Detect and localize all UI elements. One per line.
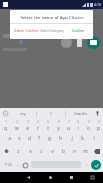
staticText: m: [83, 148, 88, 155]
button[interactable]: Voice input: [94, 110, 101, 117]
button[interactable]: Delete Confirm: [12, 28, 39, 34]
staticText: p: [97, 125, 100, 132]
staticText: 1: [5, 120, 7, 124]
staticText: t: [47, 125, 49, 132]
staticText: 0: [98, 120, 100, 124]
button[interactable]: g: [44, 132, 55, 145]
staticText: y: [57, 125, 60, 132]
staticText: 7: [68, 120, 70, 124]
button[interactable]: m: [80, 145, 91, 158]
staticText: w: [15, 125, 19, 132]
button[interactable]: Emoji: [21, 161, 29, 169]
button[interactable]: v: [47, 145, 58, 158]
staticText: b: [62, 148, 65, 155]
button[interactable]: Confirm Selection: [65, 28, 91, 34]
button[interactable]: .: [83, 158, 90, 171]
staticText: k: [81, 135, 84, 142]
button[interactable]: a: [4, 132, 14, 145]
button[interactable]: Screenshot: [88, 173, 97, 182]
button[interactable]: 2: [11, 119, 22, 132]
button[interactable]: I: [37, 108, 65, 119]
button[interactable]: h: [55, 132, 66, 145]
staticText: l: [93, 135, 95, 142]
staticText: Confirm Selection: [65, 29, 91, 33]
button[interactable]: z: [12, 145, 24, 158]
button[interactable]: s: [14, 132, 24, 145]
staticText: .: [86, 161, 88, 168]
staticText: 4:15: [94, 2, 101, 7]
staticText: Select Category: [40, 29, 64, 33]
staticText: x: [29, 148, 32, 155]
staticText: 5: [47, 120, 49, 124]
staticText: o: [87, 125, 90, 132]
staticText: q: [4, 125, 7, 132]
staticText: 6: [58, 120, 60, 124]
button[interactable]: 0: [93, 119, 103, 132]
button[interactable]: x: [24, 145, 36, 158]
button[interactable]: c: [36, 145, 47, 158]
button[interactable]: k: [77, 132, 88, 145]
button[interactable]: Keyboard settings: [2, 110, 9, 117]
staticText: 9: [88, 120, 90, 124]
button[interactable]: n: [69, 145, 80, 158]
staticText: r: [37, 125, 39, 132]
button[interactable]: Home: [46, 173, 55, 182]
staticText: 3: [27, 120, 29, 124]
button[interactable]: 9: [83, 119, 93, 132]
button[interactable]: Recents: [67, 173, 76, 182]
staticText: v: [51, 148, 54, 155]
button[interactable]: f: [34, 132, 44, 145]
button[interactable]: 3: [22, 119, 33, 132]
staticText: thanks: [74, 111, 87, 116]
staticText: h: [59, 135, 62, 142]
button[interactable]: Backspace: [91, 145, 103, 158]
staticText: my: [20, 111, 26, 116]
staticText: 2: [16, 120, 18, 124]
staticText: j: [71, 135, 73, 142]
staticText: g: [48, 135, 51, 142]
staticText: s: [18, 135, 21, 142]
button[interactable]: b: [58, 145, 69, 158]
staticText: a: [8, 135, 11, 142]
staticText: 4: [37, 120, 39, 124]
button[interactable]: Select Category: [39, 28, 65, 34]
staticText: 8: [77, 120, 79, 124]
staticText: z: [17, 148, 20, 155]
staticText: u: [67, 125, 70, 132]
staticText: ,: [17, 161, 19, 168]
staticText: i: [77, 125, 79, 132]
staticText: f: [38, 135, 40, 142]
button[interactable]: d: [24, 132, 34, 145]
button[interactable]: l: [88, 132, 99, 145]
button[interactable]: Back: [24, 173, 33, 182]
button[interactable]: j: [66, 132, 77, 145]
button[interactable]: ,: [14, 158, 21, 171]
button[interactable]: Shift: [0, 145, 12, 158]
staticText: d: [28, 135, 31, 142]
button[interactable]: 6: [53, 119, 63, 132]
staticText: ?123: [4, 162, 12, 167]
button[interactable]: 5: [43, 119, 53, 132]
staticText: e: [26, 125, 29, 132]
button[interactable]: 8: [73, 119, 83, 132]
staticText: Delete Confirm: [14, 29, 38, 33]
staticText: I: [50, 111, 52, 116]
button[interactable]: thanks: [66, 108, 94, 119]
button[interactable]: 1: [0, 119, 11, 132]
button[interactable]: Enter: [91, 160, 101, 170]
button[interactable]: 7: [63, 119, 73, 132]
staticText: Select the name of App Cluster: [20, 14, 84, 20]
staticText: n: [73, 148, 76, 155]
button[interactable]: ?123: [1, 158, 14, 171]
button[interactable]: my: [9, 108, 36, 119]
staticText: c: [40, 148, 43, 155]
button[interactable]: 4: [33, 119, 43, 132]
